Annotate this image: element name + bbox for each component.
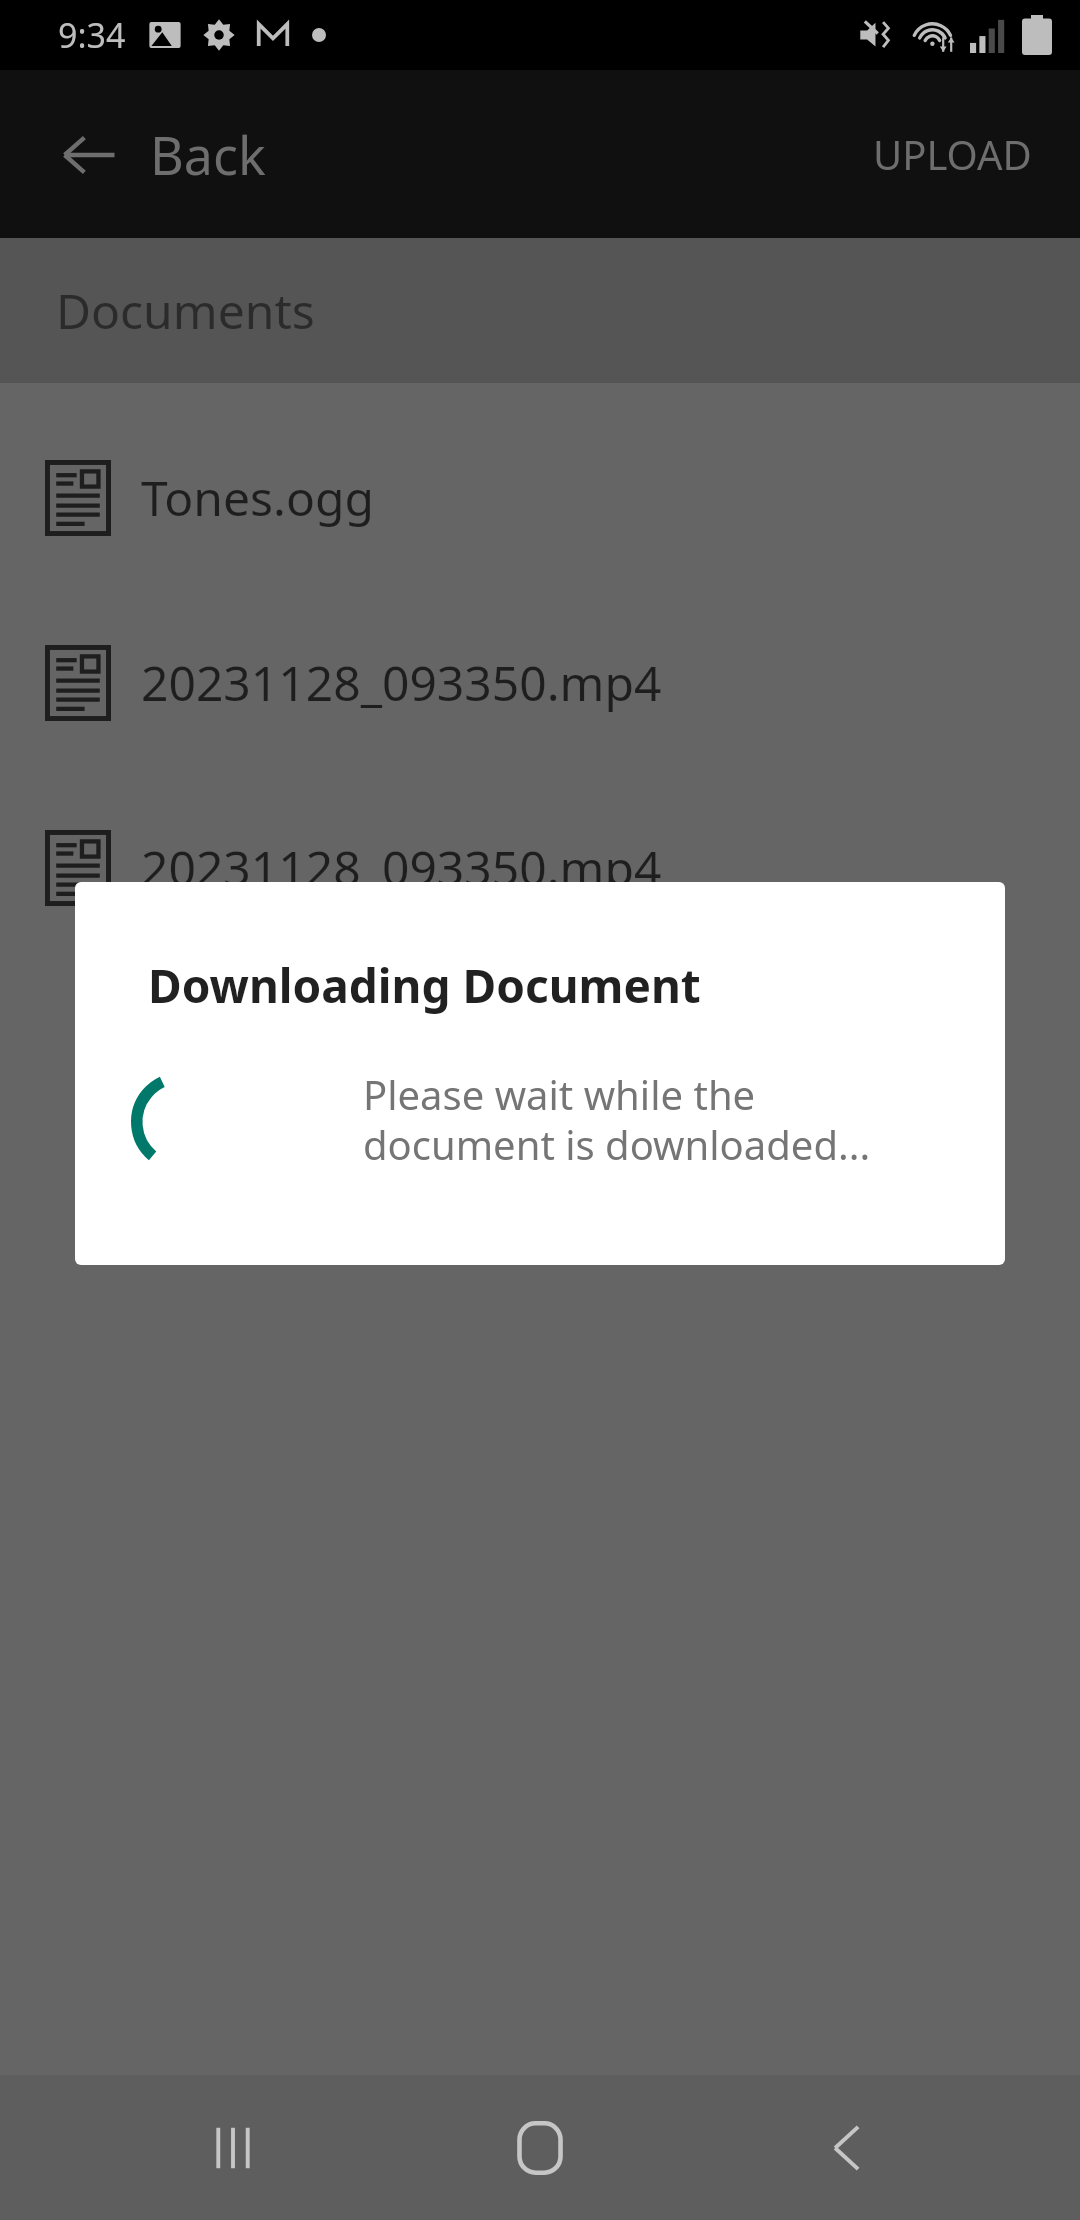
button[interactable]: Tones.ogg <box>0 405 1080 590</box>
staticText: Downloading Document <box>148 954 701 1017</box>
button[interactable]: 20231128_093350.mp4 <box>0 590 1080 775</box>
staticText: 20231128_093350.mp4 <box>141 650 662 715</box>
button[interactable]: Home <box>465 2075 615 2220</box>
button[interactable]: Back <box>773 2075 923 2220</box>
button[interactable]: UPLOAD <box>825 97 1080 211</box>
button[interactable]: Back <box>0 103 290 206</box>
staticText: Documents <box>56 278 315 343</box>
button[interactable]: Recents <box>158 2075 308 2220</box>
staticText: 9:34 <box>58 12 126 58</box>
staticText: 20231128_093350.mp4 <box>141 835 662 900</box>
staticText: Please wait while the document is downlo… <box>363 1067 871 1172</box>
staticText: Back <box>150 119 266 190</box>
other: Back <box>60 126 118 184</box>
staticText: Tones.ogg <box>141 465 375 530</box>
button[interactable]: 20231128_093350.mp4 <box>0 775 1080 960</box>
staticText: UPLOAD <box>873 127 1032 181</box>
